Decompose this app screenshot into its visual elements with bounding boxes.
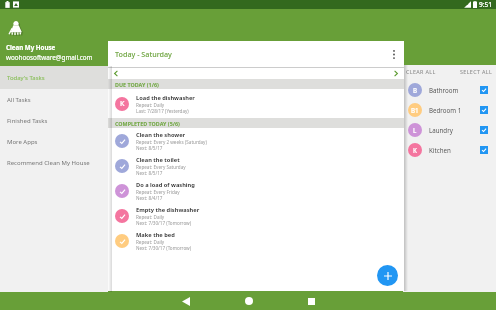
staticText: Finished Tasks (7, 117, 48, 125)
staticText: All Tasks (7, 96, 31, 104)
button[interactable]: Home (217, 292, 280, 310)
staticText: Repeat: Every Saturday (136, 164, 186, 170)
staticText: Clean the toilet (136, 156, 180, 164)
button[interactable]: B (403, 80, 496, 100)
staticText: Bedroom 1 (429, 106, 462, 114)
staticText: Repeat: Every Friday (136, 189, 180, 195)
staticText: Load the dishwasher (136, 94, 195, 102)
staticText: COMPLETED TODAY (5/6) (115, 120, 180, 127)
button[interactable]: More Apps (0, 131, 108, 152)
staticText: Kitchen (429, 146, 451, 154)
button[interactable]: Empty the dishwasher (108, 203, 404, 228)
staticText: Repeat: Daily (136, 102, 165, 108)
button[interactable]: Finished Tasks (0, 110, 108, 131)
staticText: L (413, 126, 417, 134)
button[interactable]: Clean the shower (108, 128, 404, 153)
button[interactable]: L (403, 120, 496, 140)
staticText: Next: 8/4/17 (136, 195, 163, 201)
staticText: Next: 8/5/17 (136, 145, 163, 151)
button[interactable]: Previous day (108, 68, 124, 79)
staticText: More Apps (7, 138, 38, 146)
staticText: Do a load of washing (136, 181, 195, 189)
button[interactable]: Add task (377, 265, 398, 286)
button[interactable]: SELECT ALL (460, 68, 493, 75)
button[interactable]: K (108, 89, 404, 118)
button[interactable]: Recommend Clean My House (0, 152, 108, 173)
staticText: Empty the dishwasher (136, 206, 200, 214)
button[interactable]: Today's Tasks (0, 66, 108, 89)
button[interactable]: Next day (388, 68, 404, 79)
staticText: Next: 8/5/17 (136, 170, 163, 176)
staticText: woohoosoftware@gmail.com (6, 53, 93, 62)
button[interactable]: CLEAR ALL (406, 68, 436, 75)
button[interactable]: All Tasks (0, 89, 108, 110)
button[interactable]: Do a load of washing (108, 178, 404, 203)
staticText: Laundry (429, 126, 453, 134)
staticText: Repeat: Daily (136, 239, 165, 245)
button[interactable]: B1 (403, 100, 496, 120)
staticText: Bathroom (429, 86, 459, 94)
staticText: 9:51 (479, 0, 493, 9)
staticText: Today's Tasks (7, 74, 45, 82)
staticText: Repeat: Every 2 weeks (Saturday) (136, 139, 207, 145)
button[interactable]: Recent apps (280, 292, 343, 310)
button[interactable]: Make the bed (108, 228, 404, 253)
button[interactable]: More options (388, 48, 400, 60)
staticText: Today - Saturday (115, 49, 172, 59)
staticText: K (413, 146, 417, 154)
staticText: Make the bed (136, 231, 175, 239)
staticText: Next: 7/30/17 (Tomorrow) (136, 220, 192, 226)
staticText: Clean My House (6, 43, 56, 51)
staticText: K (120, 99, 125, 109)
staticText: DUE TODAY (1/6) (115, 81, 159, 88)
staticText: Recommend Clean My House (7, 159, 90, 167)
staticText: Next: 7/30/17 (Tomorrow) (136, 245, 192, 251)
button[interactable]: Clean the toilet (108, 153, 404, 178)
staticText: B (413, 86, 418, 94)
button[interactable]: Back (154, 292, 217, 310)
staticText: Last: 7/28/17 (Yesterday) (136, 108, 189, 114)
staticText: B1 (411, 106, 419, 114)
staticText: Clean the shower (136, 131, 186, 139)
staticText: Repeat: Daily (136, 214, 165, 220)
button[interactable]: K (403, 140, 496, 160)
